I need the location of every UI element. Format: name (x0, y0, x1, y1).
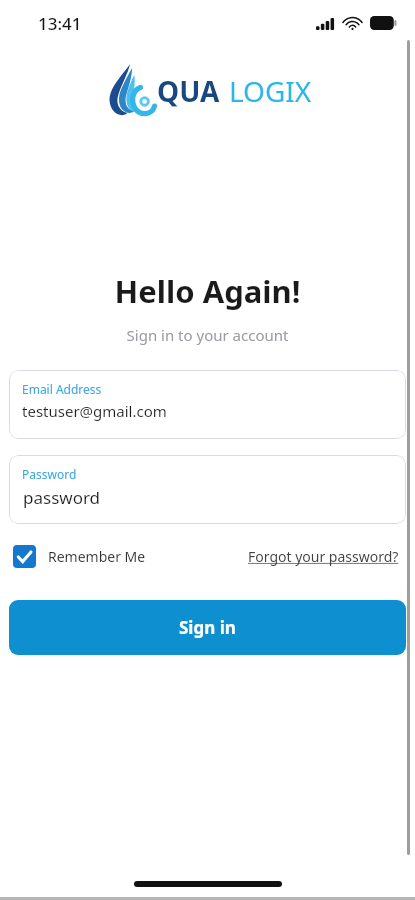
staticText: testuser@gmail.com (22, 401, 167, 421)
button[interactable]: Email Address (9, 370, 406, 439)
button[interactable]: Forgot your password? (246, 541, 401, 572)
staticText: Remember Me (48, 547, 146, 566)
staticText: 13:41 (38, 12, 82, 35)
staticText: Hello Again! (0, 270, 415, 312)
staticText: QUA (157, 72, 220, 110)
staticText: Password (22, 466, 77, 482)
staticText: Sign in (179, 616, 236, 639)
staticText: Forgot your password? (248, 547, 399, 566)
staticText: LOGIX (229, 72, 312, 110)
staticText: password (23, 486, 101, 509)
staticText: Email Address (22, 381, 102, 397)
other: Aqua Logix logo (103, 62, 155, 120)
button[interactable]: Remember Me (9, 541, 150, 572)
staticText: Sign in to your account (0, 325, 415, 345)
button[interactable]: Password (9, 455, 406, 524)
button[interactable]: Sign in (9, 600, 406, 655)
